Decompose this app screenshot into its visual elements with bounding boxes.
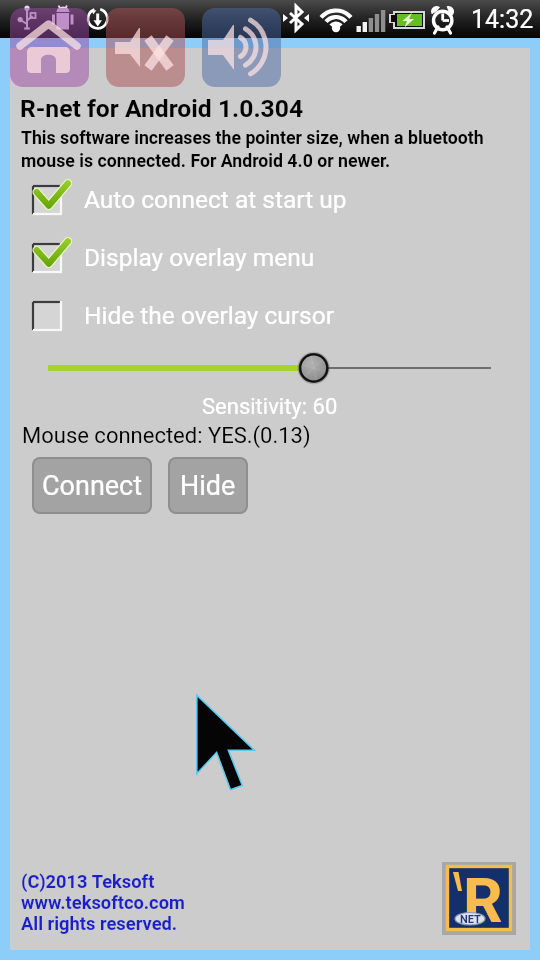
- button[interactable]: Auto connect at start up: [22, 177, 492, 222]
- staticText: Display overlay menu: [84, 243, 315, 272]
- button[interactable]: Volume: [202, 8, 281, 87]
- staticText: Connect: [42, 470, 143, 502]
- button[interactable]: Hide: [168, 457, 248, 514]
- staticText: Hide the overlay cursor: [84, 301, 335, 330]
- staticText: Sensitivity: 60: [202, 394, 338, 420]
- button[interactable]: Home: [10, 8, 89, 87]
- staticText: 14:32: [471, 5, 534, 34]
- staticText: Mouse connected: YES.(0.13): [22, 423, 311, 449]
- staticText: R: [463, 864, 503, 937]
- staticText: R-net for Android 1.0.304: [20, 94, 304, 123]
- staticText: Hide: [180, 470, 236, 502]
- button[interactable]: Hide the overlay cursor: [22, 293, 492, 338]
- staticText: This software increases the pointer size…: [21, 128, 484, 172]
- staticText: (C)2013 Teksoft: [21, 871, 155, 892]
- staticText: All rights reserved.: [21, 913, 178, 934]
- staticText: www.teksoftco.com: [21, 892, 185, 913]
- button[interactable]: Display overlay menu: [22, 235, 492, 280]
- button[interactable]: Sensitivity slider: [0, 350, 540, 388]
- button[interactable]: Connect: [32, 457, 152, 514]
- staticText: Auto connect at start up: [84, 185, 347, 214]
- button[interactable]: Mute: [106, 8, 185, 87]
- staticText: NET: [460, 913, 481, 926]
- button[interactable]: R-net logo: [442, 862, 516, 935]
